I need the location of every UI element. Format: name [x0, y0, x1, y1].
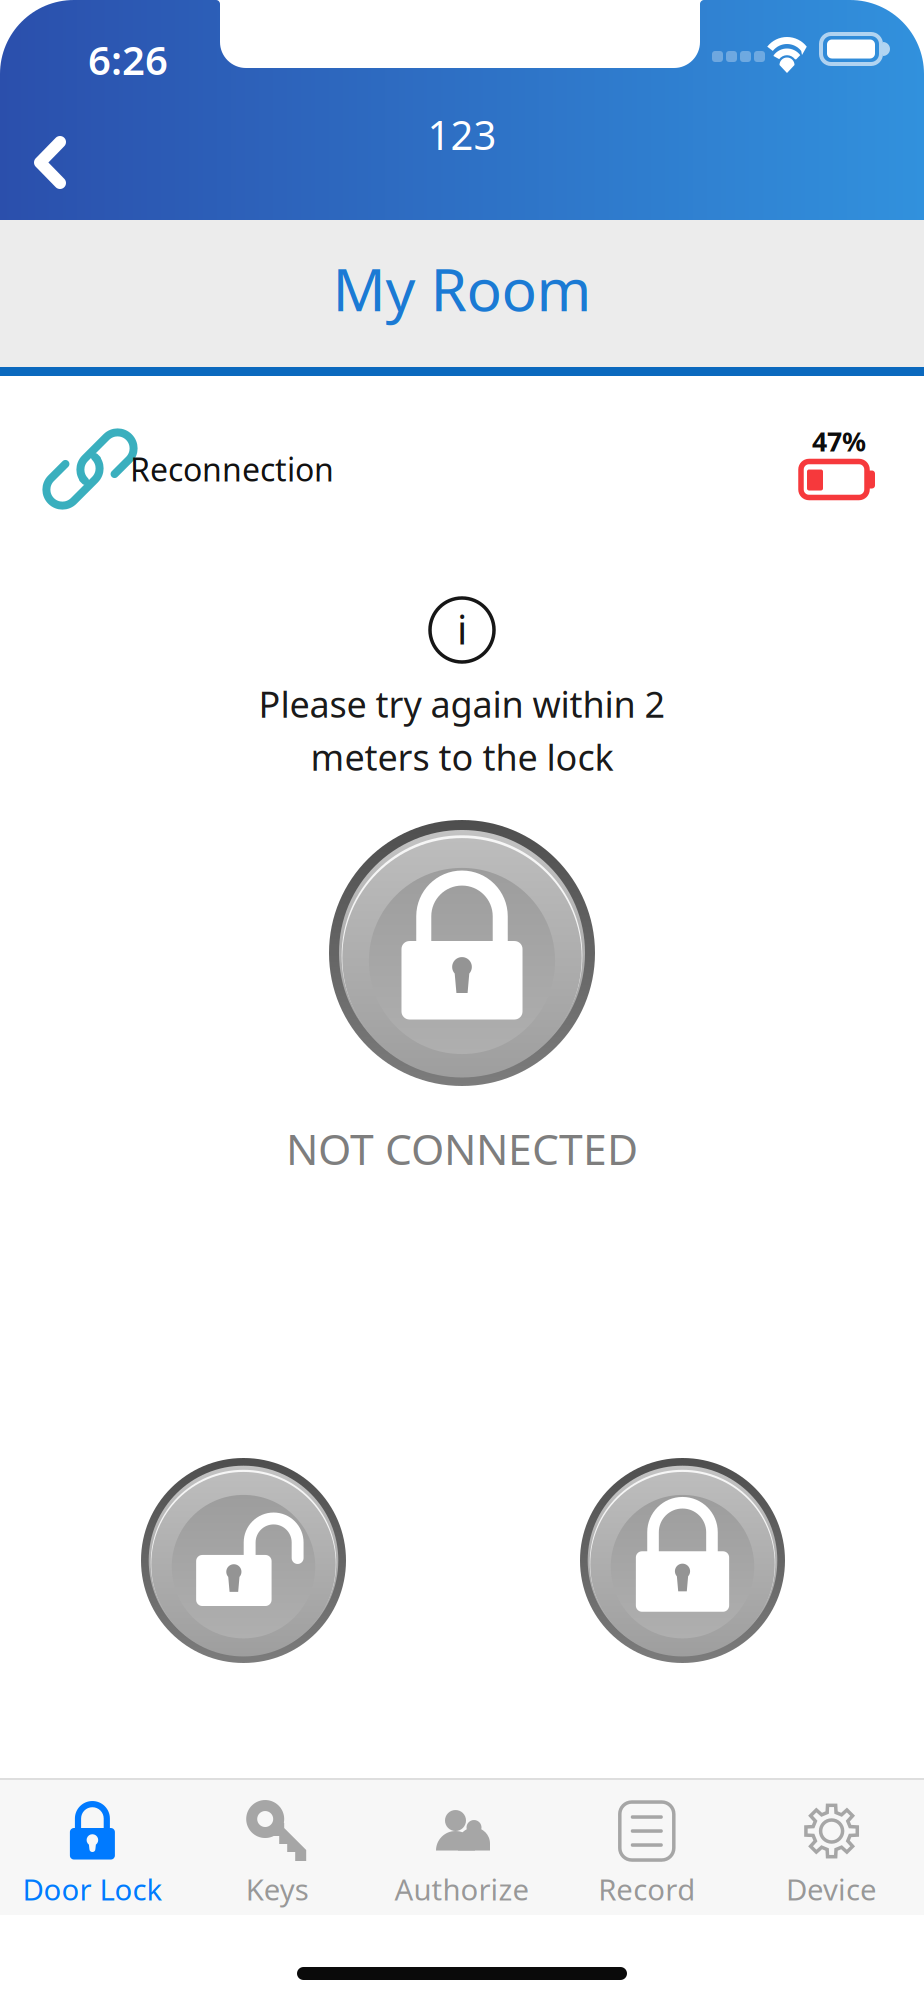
staticText: Authorize: [394, 1869, 529, 1908]
button[interactable]: Record: [554, 1778, 739, 1916]
button[interactable]: Unlock: [141, 1458, 346, 1663]
staticText: My Room: [332, 249, 591, 327]
staticText: Keys: [246, 1869, 309, 1908]
staticText: NOT CONNECTED: [286, 1120, 638, 1177]
staticText: meters to the lock: [310, 733, 613, 781]
staticText: Please try again within 2: [258, 680, 665, 728]
button[interactable]: Authorize: [370, 1778, 554, 1916]
button[interactable]: Lock status: [329, 820, 595, 1086]
button[interactable]: Lock: [580, 1458, 785, 1663]
button[interactable]: Device: [739, 1778, 924, 1916]
staticText: Record: [598, 1869, 695, 1908]
staticText: i: [457, 602, 467, 655]
staticText: 47%: [812, 423, 866, 459]
button[interactable]: Keys: [185, 1778, 370, 1916]
staticText: 6:26: [88, 33, 168, 86]
staticText: 123: [427, 108, 496, 161]
staticText: Device: [786, 1869, 877, 1908]
staticText: Door Lock: [22, 1869, 162, 1908]
staticText: Reconnection: [130, 448, 334, 490]
button[interactable]: Door Lock: [0, 1778, 185, 1916]
button[interactable]: Back: [0, 114, 96, 211]
